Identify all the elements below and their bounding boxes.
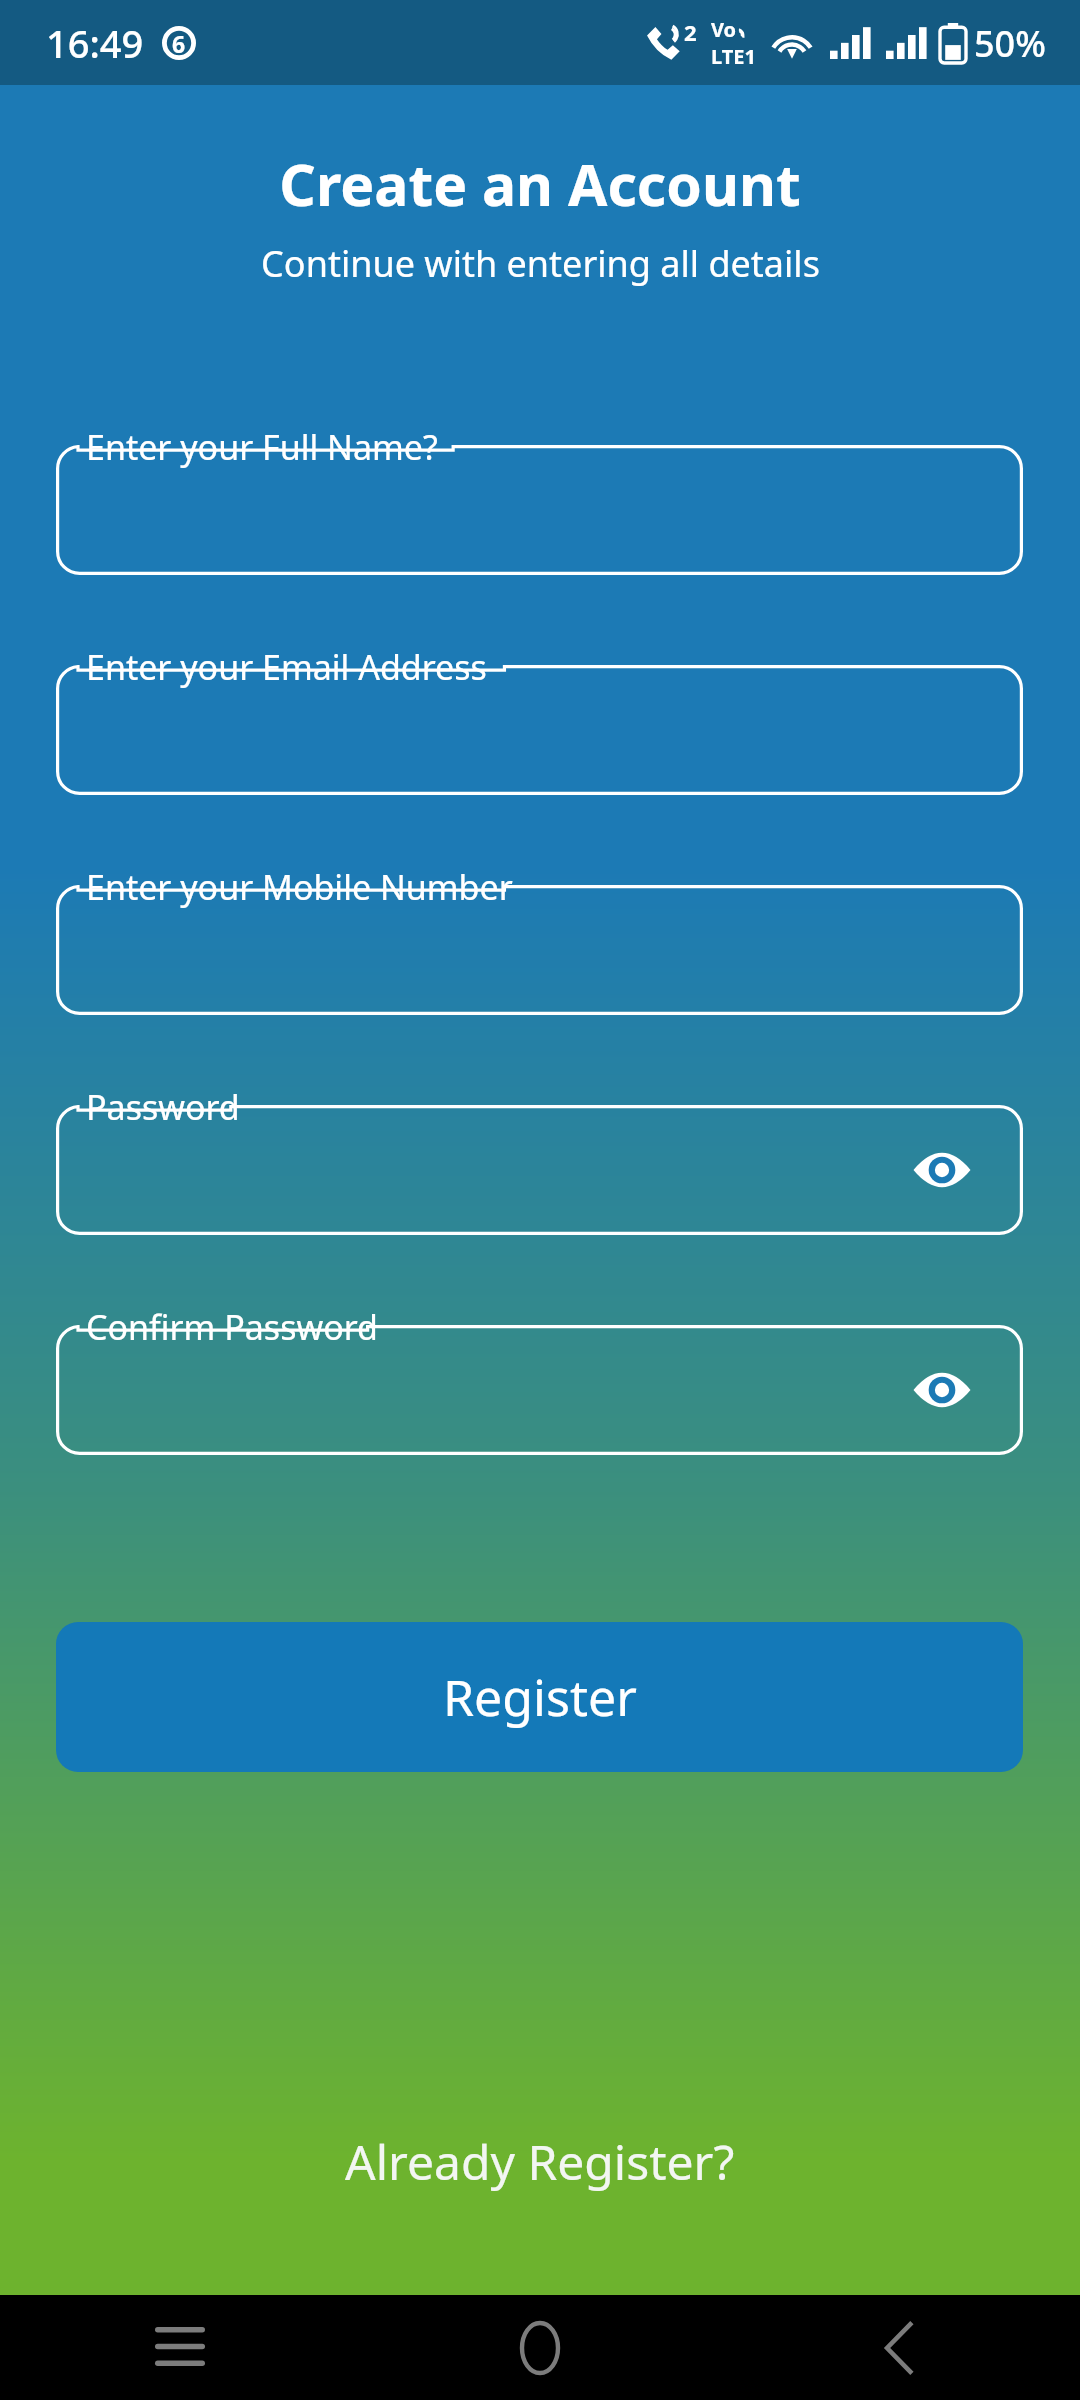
staticText: Enter your Full Name? (86, 424, 438, 470)
button[interactable]: Show password (902, 1130, 982, 1210)
staticText: Confirm Password (86, 1304, 378, 1350)
staticText: Already Register? (345, 2129, 735, 2194)
staticText: Create an Account (279, 145, 801, 223)
staticText: Enter your Mobile Number (86, 864, 513, 910)
staticText: Enter your Email Address (86, 644, 487, 690)
staticText: 2 (684, 17, 697, 47)
staticText: Password (86, 1084, 240, 1130)
button[interactable]: Back (720, 2295, 1080, 2400)
button[interactable]: Password (56, 1105, 1023, 1235)
button[interactable]: Register (56, 1622, 1023, 1772)
button[interactable]: Home (360, 2295, 720, 2400)
staticText: 6 (172, 28, 186, 59)
button[interactable]: Enter your Full Name? (56, 445, 1023, 575)
button[interactable]: Recent apps (0, 2295, 360, 2400)
button[interactable]: Already Register? (0, 2118, 1080, 2204)
staticText: 16:49 (46, 17, 144, 69)
button[interactable]: Enter your Mobile Number (56, 885, 1023, 1015)
button[interactable]: Enter your Email Address (56, 665, 1023, 795)
staticText: 50% (974, 19, 1046, 68)
button[interactable]: Confirm Password (56, 1325, 1023, 1455)
staticText: Vo (711, 16, 737, 43)
staticText: Continue with entering all details (261, 239, 820, 288)
button[interactable]: Show password (902, 1350, 982, 1430)
staticText: Register (443, 1663, 637, 1731)
staticText: LTE1 (711, 43, 756, 70)
